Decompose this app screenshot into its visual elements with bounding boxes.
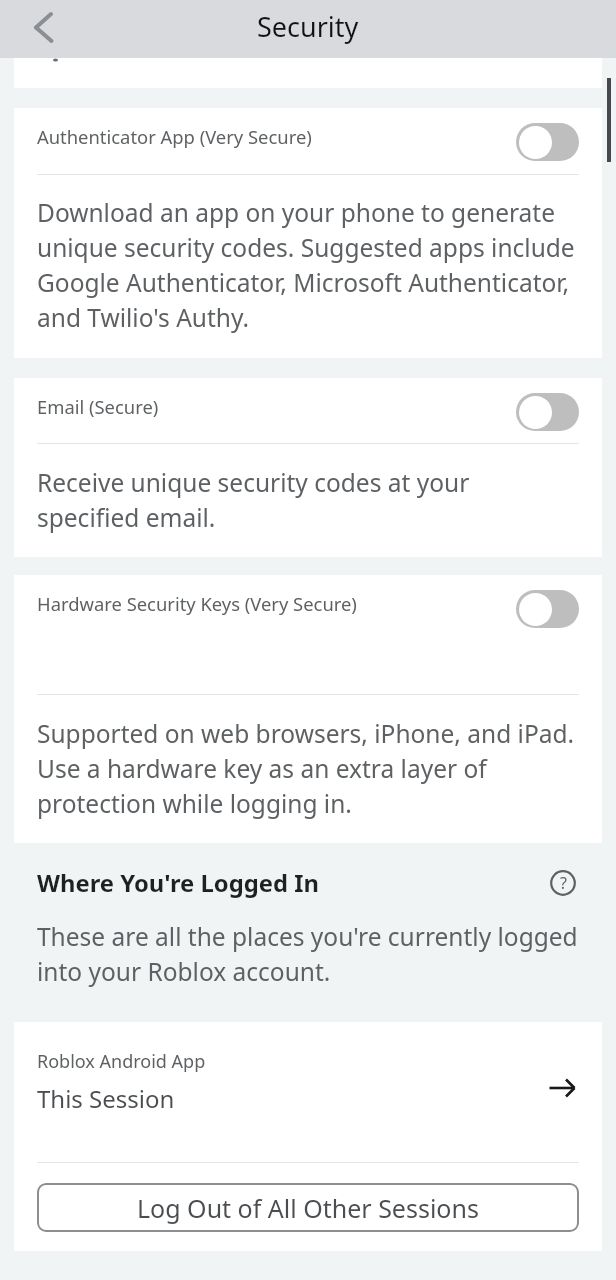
button[interactable]: Toggle — [516, 590, 579, 628]
button[interactable]: Toggle — [516, 123, 579, 161]
staticText: Hardware Security Keys (Very Secure) — [37, 591, 516, 616]
staticText: These are all the places you're currentl… — [37, 920, 594, 988]
button[interactable]: Help — [546, 866, 580, 900]
staticText: Where You're Logged In — [37, 867, 319, 899]
staticText: Log Out of All Other Sessions — [137, 1191, 479, 1225]
button[interactable]: Email (Secure) — [14, 378, 602, 434]
staticText: Supported on web browsers, iPhone, and i… — [37, 717, 577, 820]
button[interactable]: Roblox Android App — [14, 1022, 602, 1162]
staticText: Security — [257, 8, 359, 45]
staticText: This Session — [37, 1082, 175, 1115]
staticText: Authenticator App (Very Secure) — [37, 124, 516, 149]
button[interactable]: Hardware Security Keys (Very Secure) — [14, 575, 602, 631]
staticText: Roblox Android App — [37, 1049, 206, 1074]
staticText: Email (Secure) — [37, 394, 516, 419]
staticText: ? — [560, 872, 567, 894]
button[interactable]: Back — [20, 5, 68, 53]
button[interactable]: Toggle — [516, 393, 579, 431]
staticText: Download an app on your phone to generat… — [37, 196, 577, 334]
staticText: Receive unique security codes at your sp… — [37, 466, 577, 534]
button[interactable]: Authenticator App (Very Secure) — [14, 108, 602, 164]
button[interactable]: Open session details — [542, 1068, 582, 1108]
button[interactable]: Log Out of All Other Sessions — [37, 1183, 579, 1232]
